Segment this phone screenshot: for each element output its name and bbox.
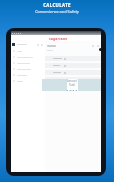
button[interactable] xyxy=(45,56,101,61)
button[interactable] xyxy=(11,66,45,72)
button[interactable] xyxy=(11,72,45,78)
button[interactable] xyxy=(11,54,45,60)
button[interactable]: Menu xyxy=(11,41,45,48)
staticText: Convenience and Safety xyxy=(35,9,79,14)
staticText: CALCULATE xyxy=(43,2,71,8)
button[interactable] xyxy=(11,60,45,66)
button[interactable] xyxy=(45,70,101,75)
button[interactable] xyxy=(45,77,101,82)
button[interactable]: Amount Total xyxy=(42,79,101,91)
button[interactable] xyxy=(45,63,101,68)
staticText: Amount Total xyxy=(64,79,80,87)
staticText: 1211 xyxy=(66,88,78,91)
button[interactable] xyxy=(11,78,45,84)
staticText: sugarcane xyxy=(49,36,68,40)
button[interactable] xyxy=(11,48,45,54)
button[interactable]: Account xyxy=(99,48,102,51)
